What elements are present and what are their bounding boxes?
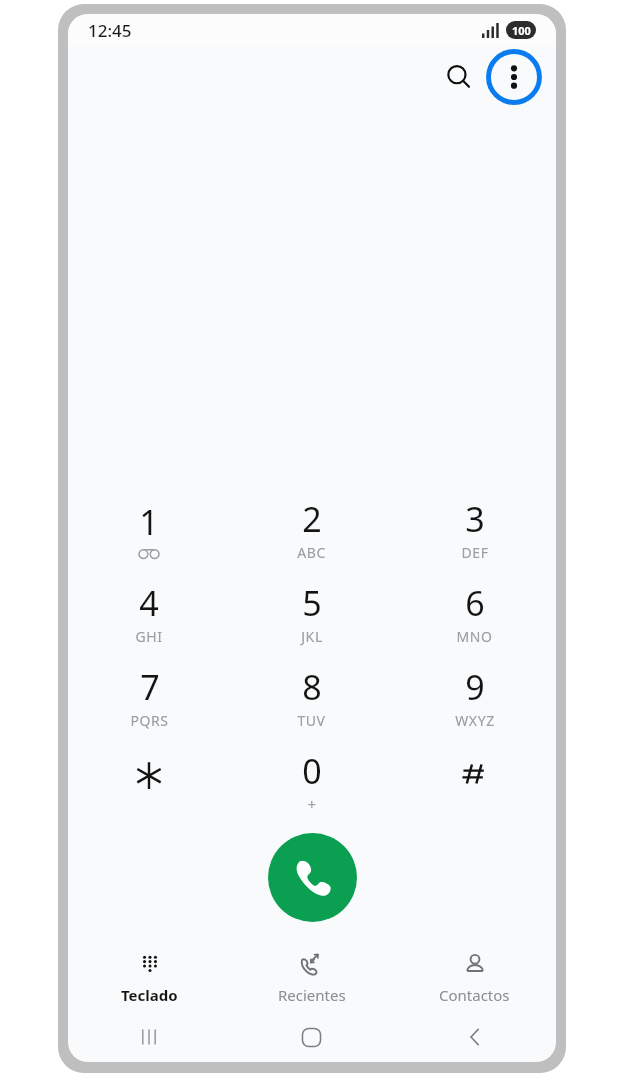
staticText: Teclado — [121, 985, 178, 1005]
staticText: DEF — [461, 543, 489, 562]
button[interactable] — [393, 739, 556, 823]
button[interactable]: Home — [230, 1012, 393, 1062]
staticText: ABC — [297, 543, 326, 562]
staticText: WXYZ — [455, 711, 495, 730]
button[interactable] — [68, 739, 230, 823]
button[interactable]: 1 — [68, 487, 230, 571]
staticText: 2 — [302, 496, 322, 542]
staticText: 9 — [465, 664, 485, 710]
staticText: TUV — [297, 711, 326, 730]
staticText: 3 — [465, 496, 485, 542]
button[interactable]: 5 — [230, 571, 393, 655]
button[interactable]: 2 — [230, 487, 393, 571]
button[interactable]: 7 — [68, 655, 230, 739]
staticText: JKL — [301, 627, 323, 646]
staticText: 12:45 — [88, 19, 132, 42]
staticText: 4 — [139, 580, 159, 626]
button[interactable]: 4 — [68, 571, 230, 655]
button[interactable]: Back — [393, 1012, 556, 1062]
staticText: 100 — [512, 23, 531, 38]
button[interactable]: Recent apps — [68, 1012, 230, 1062]
staticText: 7 — [140, 664, 160, 710]
staticText: 5 — [302, 580, 322, 626]
button[interactable]: Teclado — [68, 944, 230, 1012]
button[interactable]: Contactos — [393, 944, 556, 1012]
button[interactable]: 3 — [393, 487, 556, 571]
staticText: 1 — [139, 499, 159, 545]
button[interactable]: Recientes — [230, 944, 393, 1012]
staticText: PQRS — [130, 711, 169, 730]
button[interactable]: 8 — [230, 655, 393, 739]
button[interactable]: 6 — [393, 571, 556, 655]
button[interactable]: Call — [268, 833, 357, 922]
staticText: Recientes — [278, 985, 346, 1005]
button[interactable]: 0 — [230, 739, 393, 823]
staticText: GHI — [135, 627, 163, 646]
staticText: Contactos — [439, 985, 510, 1005]
staticText: 8 — [302, 664, 322, 710]
staticText: 6 — [465, 580, 485, 626]
staticText: MNO — [456, 627, 493, 646]
staticText: 0 — [302, 748, 322, 794]
staticText: + — [307, 794, 317, 814]
button[interactable]: More options — [486, 49, 542, 105]
button[interactable]: Search — [436, 54, 482, 100]
button[interactable]: 9 — [393, 655, 556, 739]
